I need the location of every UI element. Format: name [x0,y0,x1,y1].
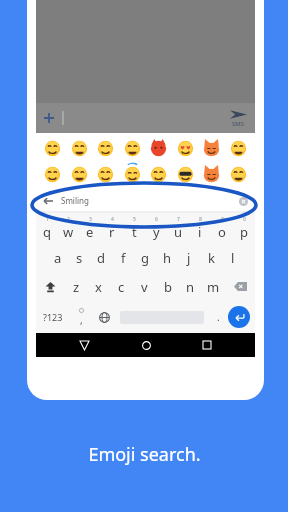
staticText: , [80,313,83,327]
button[interactable]: 4 [101,213,123,243]
button[interactable]: Emoji [43,139,62,158]
staticText: h [163,249,172,267]
staticText: k [208,249,215,267]
button[interactable]: Emoji [202,139,221,158]
button[interactable]: Emoji [43,165,62,184]
button[interactable]: c [110,272,133,301]
button[interactable]: 6 [145,213,167,243]
button[interactable]: Emoji [96,139,115,158]
button[interactable]: Emoji [149,139,168,158]
button[interactable]: 3 [79,213,101,243]
button[interactable]: . [208,301,228,333]
button[interactable]: Emoji [149,165,168,184]
button[interactable]: Clear [237,195,249,207]
button[interactable]: k [200,243,222,272]
button[interactable]: Change language [92,301,116,333]
button[interactable]: Emoji [70,139,89,158]
staticText: ?123 [43,311,63,323]
button[interactable]: Emoji [70,165,89,184]
button[interactable]: Emoji [176,165,195,184]
button[interactable]: Enter [228,306,250,328]
staticText: 0 [243,216,246,223]
staticText: 5 [133,216,136,223]
staticText: m [207,278,220,296]
staticText: 9 [221,216,224,223]
staticText: r [109,223,115,241]
staticText: f [121,249,126,267]
staticText: . [217,310,220,324]
staticText: w [63,223,74,241]
button[interactable]: g [134,243,156,272]
button[interactable]: 8 [189,213,211,243]
button[interactable]: Emoji [229,165,248,184]
staticText: j [187,249,191,267]
button[interactable]: 0 [233,213,255,243]
button[interactable]: 1 [36,213,57,243]
button[interactable]: x [87,272,110,301]
button[interactable]: l [222,243,244,272]
button[interactable]: m [202,272,225,301]
button[interactable]: Emoji [123,165,142,184]
staticText: i [198,223,202,241]
staticText: t [132,223,137,241]
button[interactable]: ?123 [36,301,70,333]
staticText: Smiling [61,195,89,206]
staticText: 2 [67,216,70,223]
button[interactable]: s [68,243,90,272]
staticText: n [186,278,195,296]
staticText: c [118,278,125,296]
other: Back [41,194,55,208]
button[interactable]: Emoji [229,139,248,158]
staticText: 4 [111,216,114,223]
button[interactable]: 5 [123,213,145,243]
staticText: z [73,278,80,296]
button[interactable]: j [178,243,200,272]
staticText: v [141,278,148,296]
button[interactable]: n [179,272,202,301]
staticText: 6 [155,216,158,223]
staticText: q [43,223,51,241]
button[interactable]: v [133,272,156,301]
button[interactable]: Emoji [176,139,195,158]
button[interactable]: Recent apps [194,333,220,357]
staticText: g [141,249,149,267]
staticText: y [153,223,160,241]
staticText: l [231,249,235,267]
button[interactable]: 2 [57,213,79,243]
staticText: d [97,249,105,267]
staticText: p [240,223,248,241]
staticText: 3 [89,216,92,223]
button[interactable]: Emoji and comma [70,301,92,333]
button[interactable]: Emoji [96,165,115,184]
button[interactable]: Home [133,333,159,357]
staticText: o [218,223,226,241]
button[interactable]: b [156,272,179,301]
button[interactable]: Emoji [123,139,142,158]
button[interactable]: Emoji [202,165,221,184]
button[interactable]: Back [36,189,255,212]
staticText: b [164,278,172,296]
button[interactable]: 7 [167,213,189,243]
staticText: s [76,249,83,267]
button[interactable]: f [112,243,134,272]
staticText: e [86,223,94,241]
staticText: Emoji search. [88,442,201,467]
staticText: u [174,223,183,241]
button[interactable]: z [65,272,87,301]
button[interactable]: Back [71,333,97,357]
staticText: 1 [46,216,49,223]
button[interactable]: a [47,243,68,272]
button[interactable]: Add attachment [36,105,62,131]
staticText: 8 [199,216,202,223]
button[interactable]: h [156,243,178,272]
button[interactable]: Backspace [225,272,255,301]
staticText: a [54,249,62,267]
button[interactable]: d [90,243,112,272]
button[interactable]: Send SMS [230,109,247,128]
button[interactable]: 9 [211,213,233,243]
staticText: SMS [232,120,245,128]
staticText: x [95,278,102,296]
staticText: 7 [177,216,180,223]
button[interactable]: Shift [36,272,65,301]
